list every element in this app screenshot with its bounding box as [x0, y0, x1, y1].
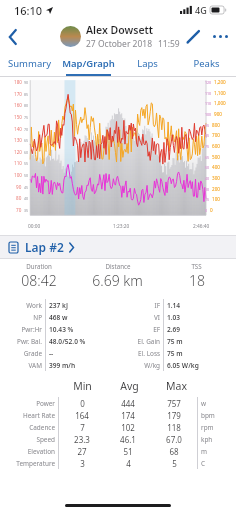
staticText: Lap #2	[25, 239, 64, 255]
staticText: 140	[14, 126, 22, 132]
staticText: 100	[14, 172, 22, 178]
staticText: C	[201, 459, 206, 468]
staticText: 00:00	[28, 223, 41, 230]
staticText: 51	[123, 446, 133, 457]
staticText: 180	[14, 79, 22, 85]
staticText: 45	[24, 185, 29, 190]
button[interactable]: More options	[206, 20, 234, 53]
staticText: 15	[205, 197, 210, 202]
staticText: EF	[153, 325, 160, 334]
staticText: 6.69 km	[92, 271, 143, 290]
staticText: 5	[172, 458, 177, 469]
staticText: 40	[205, 176, 210, 181]
staticText: 468 w	[49, 313, 68, 322]
staticText: El. Loss	[138, 349, 160, 358]
staticText: 2.69	[167, 325, 181, 334]
staticText: 70	[16, 207, 22, 213]
staticText: 75 m	[167, 337, 183, 346]
staticText: 500	[212, 154, 220, 160]
staticText: 11:59	[158, 38, 180, 50]
staticText: m	[201, 447, 207, 456]
staticText: 110	[205, 91, 212, 96]
staticText: 90	[16, 184, 22, 190]
staticText: 80	[24, 103, 29, 108]
staticText: 67.0	[166, 434, 182, 445]
staticText: TSS	[191, 262, 202, 270]
staticText: 170	[14, 91, 22, 97]
staticText: 6.05 W/kg	[167, 361, 199, 370]
staticText: 164	[75, 410, 89, 421]
staticText: 1.03	[167, 313, 181, 322]
staticText: 102	[121, 422, 135, 433]
staticText: 1.14	[167, 301, 181, 310]
staticText: 400	[212, 164, 220, 170]
button[interactable]: Lap #2	[0, 236, 236, 258]
staticText: Avg	[120, 379, 139, 393]
staticText: 130	[14, 137, 22, 143]
button[interactable]: Map/Graph	[59, 53, 118, 74]
staticText: 4G	[195, 4, 207, 16]
staticText: VI	[153, 313, 160, 322]
button[interactable]: Back	[0, 20, 26, 53]
button[interactable]: Summary	[0, 53, 59, 74]
staticText: 179	[167, 410, 181, 421]
staticText: 18	[189, 271, 205, 290]
staticText: rpm	[201, 423, 214, 432]
staticText: 200	[212, 186, 220, 192]
staticText: Summary	[8, 57, 51, 70]
staticText: 48.0/52.0 %	[49, 337, 86, 346]
staticText: Map/Graph	[62, 57, 115, 70]
staticText: 7	[80, 422, 85, 433]
staticText: Speed	[36, 435, 55, 444]
staticText: 399 m/h	[49, 361, 76, 370]
staticText: Pwr. Bal.	[17, 337, 42, 346]
staticText: 75 m	[167, 349, 183, 358]
staticText: 174	[121, 410, 135, 421]
staticText: 35	[24, 208, 29, 213]
staticText: 4	[126, 458, 131, 469]
staticText: 100	[205, 112, 212, 117]
staticText: 16:10	[14, 3, 43, 18]
staticText: 444	[121, 398, 135, 409]
staticText: 100	[212, 196, 220, 202]
staticText: 300	[212, 175, 220, 181]
staticText: 50	[24, 173, 29, 178]
staticText: 1,200	[214, 79, 226, 85]
staticText: Alex Dowsett	[86, 23, 154, 37]
staticText: 40	[24, 196, 29, 201]
staticText: 600	[212, 143, 220, 149]
staticText: 27 October 2018	[86, 38, 153, 50]
staticText: 65	[24, 138, 29, 143]
staticText: 118	[167, 422, 181, 433]
staticText: 900	[214, 111, 222, 117]
button[interactable]: Peaks	[177, 53, 236, 74]
staticText: 23.3	[74, 434, 90, 445]
staticText: kph	[201, 435, 213, 444]
staticText: 55	[24, 161, 29, 166]
staticText: Max	[166, 379, 187, 393]
staticText: Min	[73, 379, 92, 393]
staticText: Work	[26, 301, 42, 310]
staticText: 08:42	[21, 271, 57, 290]
staticText: 75	[24, 115, 29, 120]
button[interactable]: Edit	[180, 20, 206, 53]
staticText: 1,000	[214, 100, 226, 106]
staticText: 150	[14, 114, 22, 120]
staticText: Pwr:Hr	[21, 325, 42, 334]
staticText: 700	[212, 132, 220, 138]
staticText: 30	[205, 187, 210, 192]
staticText: Temperature	[16, 459, 55, 468]
staticText: 160	[14, 102, 22, 108]
staticText: 110	[14, 160, 22, 166]
staticText: 95	[205, 123, 210, 128]
staticText: IF	[154, 301, 160, 310]
staticText: 65	[205, 155, 210, 160]
staticText: Grade	[23, 349, 42, 358]
staticText: 120	[205, 80, 212, 85]
staticText: Elevation	[27, 447, 55, 456]
staticText: 0	[80, 398, 85, 409]
button[interactable]: Laps	[118, 53, 177, 74]
staticText: w	[201, 399, 207, 408]
staticText: 85	[24, 92, 29, 97]
staticText: 46.1	[120, 434, 136, 445]
